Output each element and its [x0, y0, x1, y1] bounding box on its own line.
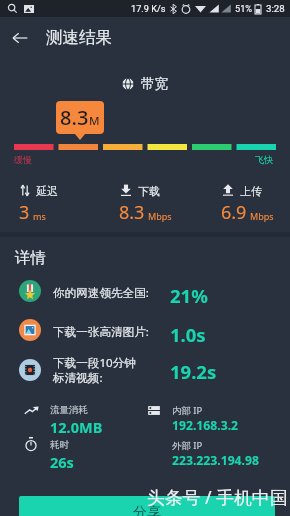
staticText: 21%: [170, 283, 208, 308]
staticText: 延迟: [36, 184, 58, 198]
staticText: 下载一张高清图片:: [53, 324, 149, 340]
staticText: 缓慢: [14, 154, 32, 165]
staticText: ms: [33, 210, 46, 222]
staticText: 内部 IP: [172, 404, 203, 417]
staticText: 测速结果: [46, 27, 112, 48]
staticText: 外部 IP: [172, 439, 203, 452]
staticText: 19.2s: [170, 359, 217, 384]
staticText: 51%: [235, 3, 253, 14]
staticText: 223.223.194.98: [172, 452, 259, 469]
staticText: 17.9 K/s: [131, 3, 166, 14]
staticText: 下载: [138, 184, 160, 198]
staticText: 1.0s: [170, 322, 206, 347]
staticText: 下载一段10分钟 标清视频:: [53, 355, 136, 386]
staticText: 分享: [133, 504, 161, 516]
button[interactable]: 分享: [19, 496, 275, 516]
staticText: 你的网速领先全国:: [53, 285, 149, 301]
staticText: 8.3: [119, 200, 145, 225]
staticText: 详情: [15, 248, 46, 268]
staticText: 3:28: [266, 3, 285, 14]
staticText: 头条号 / 手机中国: [147, 485, 288, 509]
staticText: 耗时: [50, 439, 69, 451]
staticText: 8.3: [60, 104, 89, 131]
staticText: 6.9: [221, 200, 247, 225]
staticText: Mbps: [250, 210, 274, 222]
staticText: 上传: [240, 184, 262, 198]
button[interactable]: Back: [6, 24, 34, 52]
staticText: 3: [19, 200, 30, 225]
staticText: 带宽: [141, 75, 168, 92]
staticText: Mbps: [148, 210, 172, 222]
staticText: 流量消耗: [50, 404, 88, 416]
staticText: 12.0MB: [50, 417, 103, 437]
staticText: 192.168.3.2: [172, 417, 239, 434]
staticText: 飞快: [255, 154, 273, 165]
staticText: 26s: [50, 452, 74, 472]
staticText: M: [89, 113, 100, 129]
